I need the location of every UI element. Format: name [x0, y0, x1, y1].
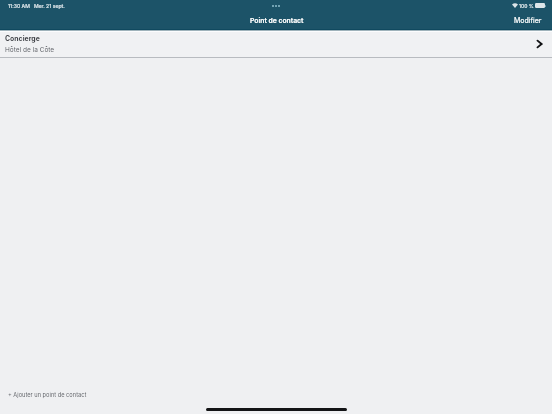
staticText: Hôtel de la Côte [5, 46, 55, 54]
button[interactable]: Modifier [506, 12, 552, 28]
staticText: 100 % [519, 3, 534, 9]
staticText: + Ajouter un point de contact [8, 391, 87, 398]
staticText: Point de contact [250, 16, 304, 24]
button[interactable]: + Ajouter un point de contact [0, 384, 552, 402]
staticText: 11:30 AM Mer. 21 sept. [8, 3, 65, 9]
staticText: Concierge [5, 34, 40, 42]
button[interactable]: Concierge [0, 32, 552, 57]
staticText: Modifier [514, 16, 542, 24]
other: Ouvrir [537, 40, 542, 48]
